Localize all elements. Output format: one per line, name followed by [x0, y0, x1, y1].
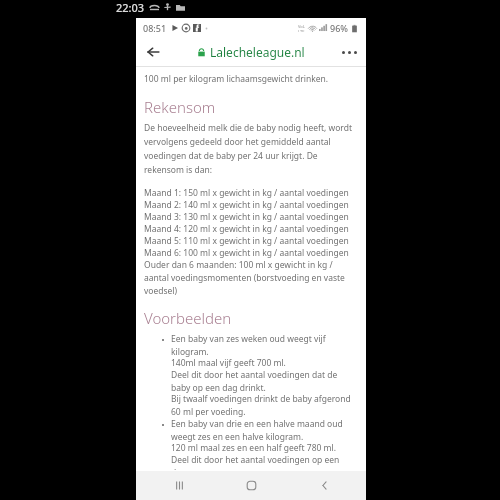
button[interactable]: Back	[294, 471, 354, 500]
staticText: 100 ml per kilogram lichaamsgewicht drin…	[144, 73, 329, 85]
staticText: Lalecheleague.nl	[210, 44, 305, 60]
staticText: Deel dit door het aantal voedingen op ee…	[171, 454, 358, 470]
staticText: Bij twaalf voedingen drinkt de baby afge…	[171, 393, 358, 417]
staticText: Maand 6: 100 ml x gewicht in kg / aantal…	[144, 247, 349, 259]
staticText: Ouder dan 6 maanden: 100 ml x gewicht in…	[144, 259, 358, 296]
staticText: LTE	[298, 29, 305, 32]
staticText: Deel dit door het aantal voedingen dat d…	[171, 369, 358, 393]
staticText: VoL	[298, 24, 305, 29]
staticText: De hoeveelheid melk die de baby nodig he…	[144, 122, 358, 175]
staticText: Rekensom	[144, 97, 216, 117]
staticText: 22:03	[116, 0, 145, 15]
button[interactable]: More options	[332, 38, 366, 66]
staticText: 96%	[330, 22, 348, 34]
staticText: Een baby van drie en een halve maand oud…	[171, 418, 358, 442]
staticText: Voorbeelden	[144, 308, 232, 328]
button[interactable]: Lalecheleague.nl	[170, 38, 332, 66]
staticText: Maand 3: 130 ml x gewicht in kg / aantal…	[144, 211, 349, 223]
button[interactable]: Home	[221, 471, 281, 500]
button[interactable]: Back	[136, 38, 170, 66]
staticText: Maand 1: 150 ml x gewicht in kg / aantal…	[144, 187, 349, 199]
staticText: Maand 5: 110 ml x gewicht in kg / aantal…	[144, 235, 349, 247]
staticText: 140ml maal vijf geeft 700 ml.	[171, 357, 286, 369]
staticText: Maand 2: 140 ml x gewicht in kg / aantal…	[144, 199, 349, 211]
staticText: 08:51	[143, 22, 167, 34]
staticText: 120 ml maal zes en een half geeft 780 ml…	[171, 442, 336, 454]
staticText: Een baby van zes weken oud weegt vijf ki…	[171, 333, 358, 357]
button[interactable]: Recent apps	[149, 471, 209, 500]
staticText: Maand 4: 120 ml x gewicht in kg / aantal…	[144, 223, 349, 235]
